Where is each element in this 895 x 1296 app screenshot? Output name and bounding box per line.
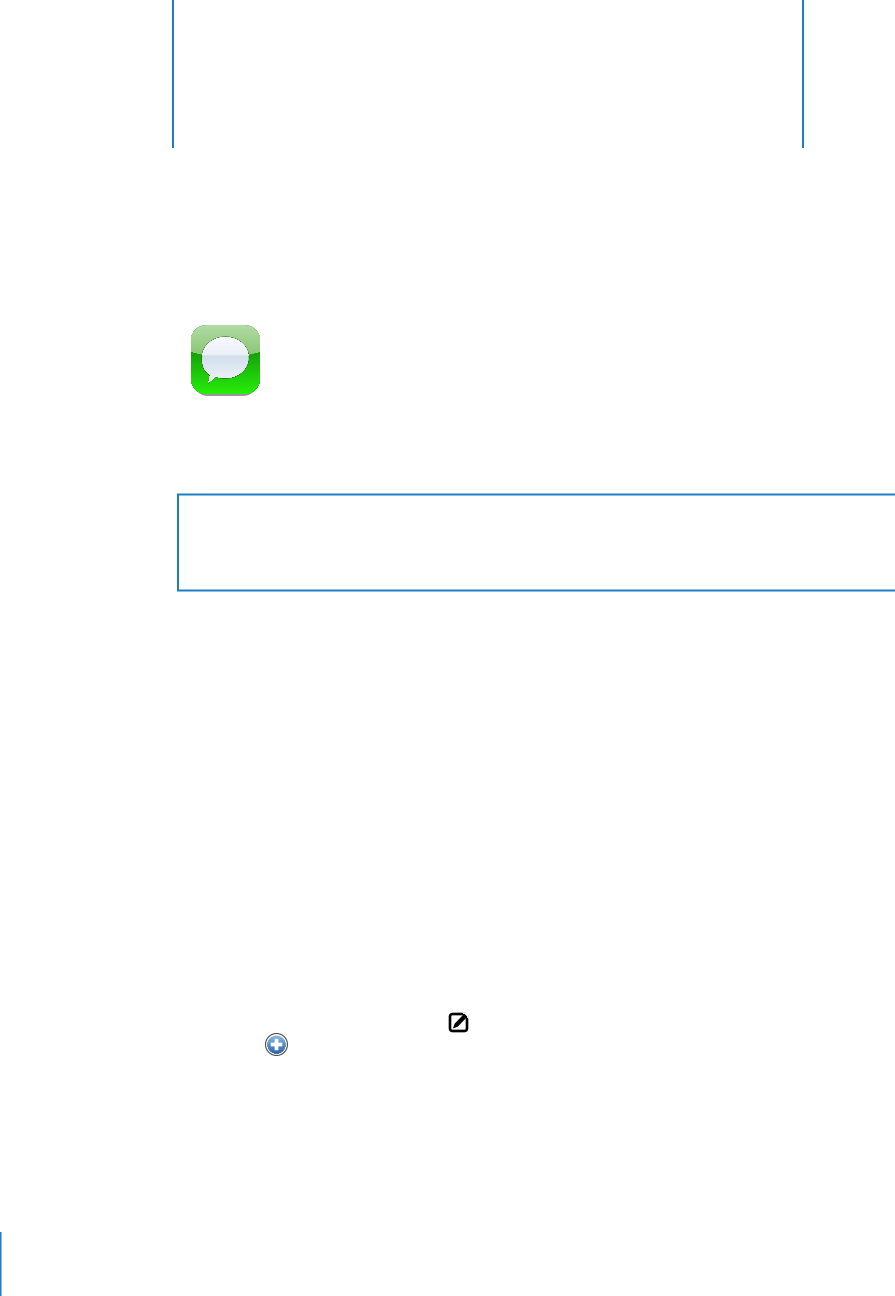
button[interactable]: Compose [447, 1011, 469, 1033]
button[interactable]: Add [263, 1031, 289, 1057]
